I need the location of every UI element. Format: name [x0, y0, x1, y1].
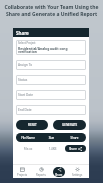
button[interactable]: Start Date	[16, 90, 86, 100]
button[interactable]: Share	[65, 145, 86, 152]
button[interactable]: Settings	[72, 167, 83, 177]
staticText: Residential/Analog audit cong verificati…	[18, 46, 68, 54]
button[interactable]: Status	[16, 75, 86, 85]
button[interactable]: End Date	[16, 105, 86, 115]
button[interactable]: GENERATE	[53, 120, 86, 130]
staticText: Collaborate with Your Team Using the Sha…	[0, 4, 103, 18]
staticText: RESET	[28, 123, 37, 127]
button[interactable]: Projects	[17, 167, 28, 177]
staticText: Status	[18, 78, 28, 82]
staticText: File.xx	[16, 147, 40, 151]
staticText: Share	[69, 147, 77, 151]
staticText: GENERATE	[62, 123, 78, 127]
staticText: Settings	[72, 173, 83, 177]
staticText: Size	[40, 136, 63, 140]
button[interactable]: Assign To	[16, 60, 86, 70]
button[interactable]: File Name	[16, 133, 86, 142]
staticText: End Date	[18, 108, 32, 112]
staticText: Share	[55, 173, 63, 177]
staticText: File Name	[16, 136, 40, 140]
button[interactable]: Share	[53, 167, 65, 177]
staticText: Share	[16, 30, 29, 36]
button[interactable]: Select Project	[16, 40, 86, 55]
staticText: Select Project	[18, 41, 36, 45]
staticText: Share	[63, 136, 86, 140]
staticText: Assign To	[18, 63, 33, 67]
staticText: Reports	[36, 173, 46, 177]
button[interactable]: RESET	[16, 120, 48, 130]
button[interactable]: Share	[13, 28, 89, 37]
staticText: Projects	[17, 173, 28, 177]
staticText: Start Date	[18, 93, 34, 97]
button[interactable]: Reports	[36, 167, 46, 177]
staticText: 1.4KB	[40, 147, 65, 151]
